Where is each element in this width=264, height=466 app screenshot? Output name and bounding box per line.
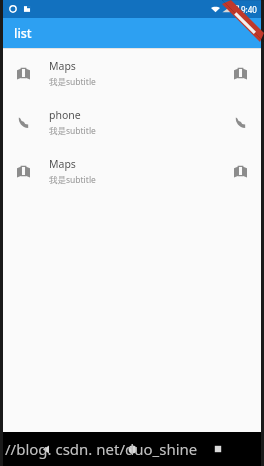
button[interactable]: Maps [3, 147, 261, 196]
button[interactable]: Recents [175, 432, 261, 466]
button[interactable]: phone [3, 98, 261, 147]
staticText: 9:40 [241, 4, 257, 15]
button[interactable]: Maps [3, 49, 261, 98]
staticText: //blog. csdn. net/duo_shine [5, 439, 198, 459]
button[interactable]: Home [89, 432, 175, 466]
staticText: list [14, 25, 32, 42]
staticText: phone [49, 108, 81, 122]
staticText: 我是subtitle [49, 125, 96, 137]
staticText: Maps [49, 59, 76, 73]
staticText: 我是subtitle [49, 174, 96, 186]
button[interactable]: Back [3, 432, 89, 466]
staticText: Maps [49, 157, 76, 171]
staticText: 我是subtitle [49, 76, 96, 88]
